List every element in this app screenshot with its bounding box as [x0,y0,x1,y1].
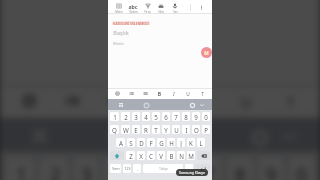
button[interactable]: Italic [178,84,222,118]
button[interactable]: Q [110,125,119,134]
button[interactable]: More options [191,0,212,14]
button[interactable]: M [187,151,195,160]
button[interactable]: 2 [40,158,68,180]
button[interactable]: Bulleted list [49,84,92,118]
button[interactable]: Keyboard settings [243,121,274,152]
button[interactable]: 4 [105,158,129,180]
staticText: 4 [144,113,148,121]
button[interactable]: F [147,138,155,147]
button[interactable]: Numbered list [92,84,135,118]
button[interactable]: 6 [166,158,191,180]
button[interactable]: Z [126,151,135,160]
staticText: Ses [173,10,178,14]
staticText: Y [164,126,168,134]
staticText: Sem [112,166,120,171]
button[interactable]: P [202,125,210,134]
button[interactable]: Keyboard settings [187,100,197,110]
button[interactable]: Undo [6,84,49,118]
staticText: T [201,91,204,96]
button[interactable]: A [116,138,125,147]
button[interactable]: Fırça [140,0,154,14]
button[interactable]: 6 [162,112,170,121]
button[interactable]: H [167,138,175,147]
staticText: Fırça [144,10,151,14]
button[interactable]: 9 [259,158,283,180]
button[interactable]: Text style [194,88,208,99]
staticText: L [199,139,203,147]
button[interactable]: I [182,125,190,134]
button[interactable]: L [197,138,205,147]
button[interactable]: Metin [112,0,126,14]
button[interactable]: X [137,151,145,160]
button[interactable]: , [133,164,141,173]
staticText: B [157,91,162,96]
button[interactable]: abc [126,0,140,14]
button[interactable]: 5 [135,158,160,180]
button[interactable]: K [187,138,195,147]
button[interactable]: Stickers [24,121,55,152]
button[interactable]: Sem [110,164,121,173]
button[interactable]: 7 [197,158,222,180]
button[interactable]: S [127,138,135,147]
button[interactable]: 1 [110,112,119,121]
button[interactable]: 5 [152,112,160,121]
button[interactable]: Numbered list [138,88,152,99]
button[interactable]: Bold [152,88,166,99]
button[interactable]: 0 [289,158,314,180]
button[interactable]: C [147,151,155,160]
button[interactable]: Undo [110,88,124,99]
button[interactable]: W [121,125,130,134]
button[interactable]: 2 [121,112,130,121]
button[interactable]: Hide keyboard [197,100,206,109]
button[interactable]: N [177,151,185,160]
button[interactable]: Y [162,125,170,134]
button[interactable]: 9 [192,112,200,121]
staticText: M [188,152,194,160]
staticText: T [154,126,158,134]
button[interactable]: 8 [182,112,190,121]
staticText: O [194,126,199,134]
button[interactable]: Emoji [141,100,151,110]
button[interactable]: D [137,138,145,147]
staticText: R [144,126,148,134]
button[interactable]: T [152,125,160,134]
button[interactable]: Stickers [116,100,126,110]
staticText: 1 [113,113,117,121]
button[interactable]: Backspace [197,151,210,160]
button[interactable]: Shift [110,151,124,160]
button[interactable]: Enter [195,164,210,173]
button[interactable]: U [172,125,180,134]
button[interactable]: O [192,125,200,134]
button[interactable]: Silgi [154,0,168,14]
button[interactable]: 4 [142,112,150,121]
button[interactable]: V [157,151,165,160]
button[interactable]: 3 [132,112,140,121]
button[interactable]: R [142,125,150,134]
button[interactable]: J [177,138,185,147]
button[interactable]: 123 [123,164,131,173]
staticText: A [119,139,123,147]
button[interactable]: Bold [135,84,178,118]
staticText: U [186,91,190,96]
button[interactable]: KATEGORİ EKLENMEDİ [112,21,150,25]
button[interactable]: Türkçe [143,164,183,173]
button[interactable]: 0 [202,112,210,121]
button[interactable]: Underline [180,88,194,99]
button[interactable]: Ses [168,0,182,14]
button[interactable]: E [132,125,140,134]
button[interactable]: B [167,151,175,160]
button[interactable]: G [157,138,165,147]
button[interactable]: Bulleted list [124,88,138,99]
staticText: Z [129,152,133,160]
button[interactable]: Italic [166,88,180,99]
button[interactable]: Bixby assistant [201,47,212,58]
button[interactable]: 8 [228,158,252,180]
button[interactable]: . [185,164,193,173]
button[interactable]: Emoji [101,121,132,152]
button[interactable]: 3 [74,158,98,180]
button[interactable]: 7 [172,112,180,121]
